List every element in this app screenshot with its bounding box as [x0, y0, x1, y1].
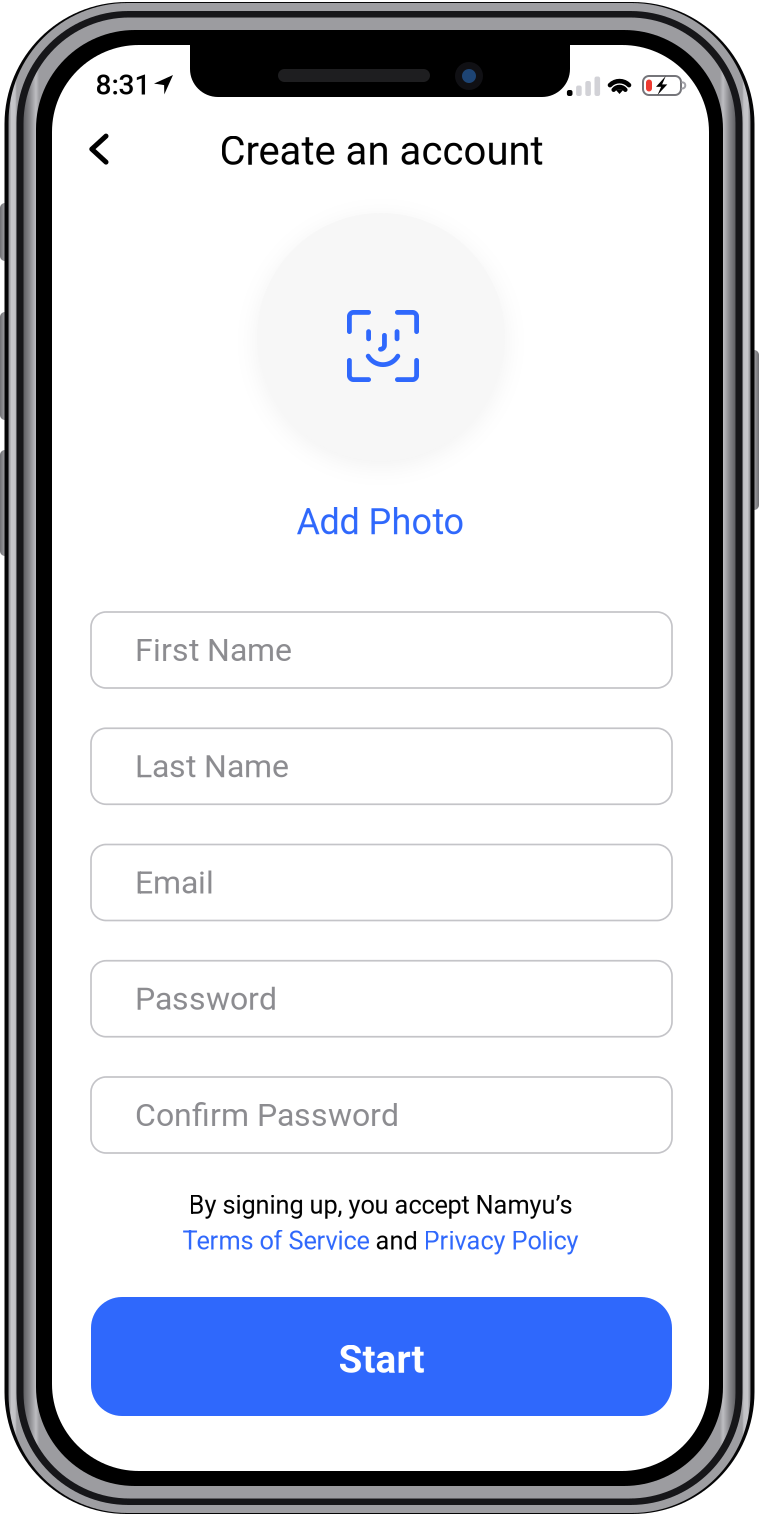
- staticText: Add Photo: [296, 501, 464, 543]
- button[interactable]: Email: [91, 844, 672, 920]
- button[interactable]: Privacy Policy: [423, 1226, 578, 1256]
- staticText: Email: [135, 864, 214, 901]
- staticText: Last Name: [135, 747, 289, 785]
- button[interactable]: Add Photo: [52, 500, 709, 544]
- staticText: and: [369, 1226, 423, 1256]
- staticText: Privacy Policy: [423, 1226, 578, 1256]
- staticText: Terms of Service: [182, 1226, 369, 1256]
- staticText: Password: [135, 980, 277, 1017]
- staticText: Start: [338, 1337, 424, 1382]
- staticText: Create an account: [219, 128, 543, 174]
- staticText: Confirm Password: [135, 1096, 399, 1134]
- button[interactable]: Back: [72, 118, 126, 179]
- button[interactable]: Add photo: [257, 213, 505, 461]
- button[interactable]: Start: [91, 1297, 672, 1416]
- staticText: By signing up, you accept Namyu’s: [188, 1190, 572, 1220]
- button[interactable]: Terms of Service: [182, 1226, 369, 1256]
- button[interactable]: First Name: [91, 612, 672, 688]
- staticText: 8:31: [95, 69, 150, 101]
- button[interactable]: Last Name: [91, 728, 672, 804]
- button[interactable]: Password: [91, 961, 672, 1037]
- button[interactable]: Confirm Password: [91, 1077, 672, 1153]
- staticText: First Name: [135, 631, 292, 669]
